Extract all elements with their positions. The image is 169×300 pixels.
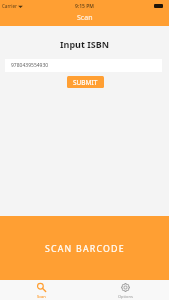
staticText: 9780439554930 [11, 62, 49, 69]
button[interactable]: SUBMIT [67, 76, 104, 88]
staticText: SUBMIT [73, 78, 98, 87]
staticText: SCAN BARCODE [45, 243, 125, 255]
staticText: Scan [37, 294, 46, 299]
staticText: Scan [77, 13, 93, 23]
button[interactable]: 9780439554930 [5, 59, 162, 72]
staticText: Options [118, 294, 133, 299]
staticText: Carrier [2, 3, 17, 9]
button[interactable]: Scan [0, 280, 84, 300]
staticText: 9:15 PM [75, 3, 94, 10]
staticText: Input ISBN [0, 38, 169, 50]
button[interactable]: Options [84, 280, 169, 300]
button[interactable]: SCAN BARCODE [0, 216, 169, 281]
